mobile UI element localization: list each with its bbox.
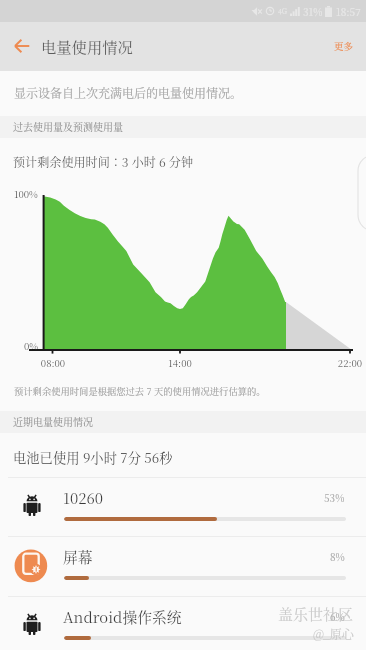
staticText: 31%: [303, 4, 323, 18]
staticText: 100%: [14, 187, 38, 201]
staticText: 预计剩余使用时间是根据您过去 7 天的使用情况进行估算的。: [14, 384, 266, 397]
staticText: 预计剩余使用时间：3 小时 6 分钟: [13, 153, 193, 170]
staticText: 18:57: [336, 4, 361, 18]
staticText: 电池已使用 9小时 7分 56秒: [13, 448, 173, 467]
staticText: 近期电量使用情况: [13, 414, 93, 428]
staticText: 8%: [330, 549, 345, 563]
staticText: 显示设备自上次充满电后的电量使用情况。: [14, 84, 243, 101]
staticText: 0%: [24, 339, 39, 353]
staticText: 电量使用情况: [41, 35, 133, 57]
staticText: 08:00: [33, 356, 73, 370]
button[interactable]: 更多: [334, 39, 354, 53]
staticText: 更多: [334, 39, 354, 53]
staticText: 22:00: [330, 356, 366, 370]
staticText: 10260: [63, 487, 103, 508]
staticText: 盖乐世社区: [278, 603, 354, 625]
staticText: 屏幕: [63, 546, 93, 567]
button[interactable]: 10260: [0, 477, 366, 537]
staticText: @_原心: [313, 625, 354, 642]
staticText: 6%: [330, 609, 345, 623]
staticText: 14:00: [160, 356, 200, 370]
button[interactable]: 屏幕: [0, 536, 366, 596]
button[interactable]: Back: [4, 31, 39, 62]
staticText: 过去使用量及预测使用量: [13, 119, 123, 133]
staticText: 4G: [278, 6, 288, 16]
button[interactable]: Android操作系统: [0, 596, 366, 650]
staticText: Android操作系统: [63, 606, 182, 627]
staticText: 53%: [324, 490, 345, 504]
